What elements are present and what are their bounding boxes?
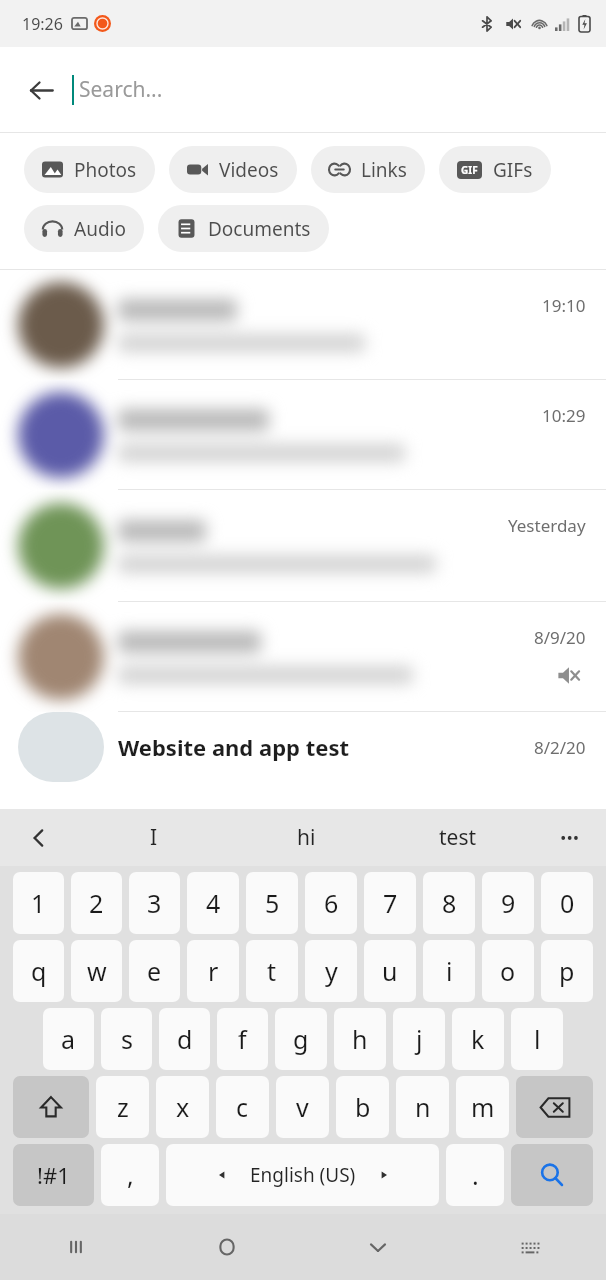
button[interactable]: test <box>382 809 534 866</box>
staticText: Photos <box>74 157 137 183</box>
staticText: 19:26 <box>22 13 63 35</box>
button[interactable] <box>0 380 606 490</box>
button[interactable]: Videos <box>169 146 297 193</box>
staticText: 10:29 <box>542 404 586 427</box>
button[interactable] <box>0 490 606 602</box>
button[interactable]: 7 <box>364 872 416 934</box>
button[interactable]: p <box>541 940 593 1002</box>
staticText: k <box>471 1022 485 1056</box>
button[interactable]: l <box>511 1008 563 1070</box>
button[interactable]: 3 <box>129 872 180 934</box>
button[interactable]: t <box>246 940 298 1002</box>
staticText: Search... <box>79 75 163 104</box>
button[interactable]: 6 <box>305 872 357 934</box>
button[interactable]: x <box>156 1076 209 1138</box>
staticText: 8 <box>442 886 457 920</box>
button[interactable]: Website and app test <box>0 712 606 782</box>
button[interactable]: GIF <box>439 146 551 193</box>
button[interactable]: j <box>393 1008 445 1070</box>
staticText: ••• <box>560 826 580 849</box>
button[interactable] <box>0 270 606 380</box>
button[interactable]: hi <box>230 809 382 866</box>
button[interactable]: 8 <box>423 872 475 934</box>
button[interactable]: Back <box>14 63 68 117</box>
button[interactable]: I <box>78 809 230 866</box>
button[interactable]: 4 <box>187 872 239 934</box>
staticText: 1 <box>31 886 46 920</box>
staticText: test <box>439 823 477 852</box>
button[interactable]: d <box>159 1008 210 1070</box>
button[interactable]: . <box>446 1144 504 1206</box>
button[interactable]: Links <box>311 146 425 193</box>
button[interactable]: More options <box>534 809 606 866</box>
staticText: 0 <box>560 886 575 920</box>
staticText: 19:10 <box>542 294 586 317</box>
button[interactable]: e <box>129 940 180 1002</box>
staticText: English (US) <box>250 1162 356 1188</box>
button[interactable]: b <box>336 1076 389 1138</box>
button[interactable]: Photos <box>24 146 155 193</box>
staticText: 5 <box>265 886 280 920</box>
staticText: 4 <box>206 886 221 920</box>
staticText: r <box>208 954 219 988</box>
staticText: u <box>382 954 398 988</box>
staticText: 6 <box>324 886 339 920</box>
button[interactable]: Shift <box>13 1076 89 1138</box>
button[interactable]: g <box>275 1008 327 1070</box>
button[interactable]: y <box>305 940 357 1002</box>
staticText: h <box>352 1022 368 1056</box>
staticText: w <box>87 954 107 988</box>
button[interactable]: k <box>452 1008 504 1070</box>
button[interactable]: , <box>101 1144 159 1206</box>
button[interactable]: Search <box>511 1144 593 1206</box>
button[interactable]: Keyboard layout <box>454 1214 606 1280</box>
button[interactable]: Backspace <box>516 1076 593 1138</box>
button[interactable]: a <box>43 1008 94 1070</box>
staticText: . <box>472 1158 479 1192</box>
staticText: Audio <box>74 216 126 242</box>
button[interactable]: f <box>217 1008 268 1070</box>
staticText: Website and app test <box>118 732 349 762</box>
staticText: f <box>238 1022 247 1056</box>
staticText: j <box>416 1022 423 1056</box>
button[interactable] <box>0 602 606 712</box>
staticText: m <box>471 1090 495 1124</box>
staticText: hi <box>297 823 316 852</box>
staticText: t <box>267 954 277 988</box>
button[interactable]: Previous suggestions <box>0 809 78 866</box>
button[interactable]: Audio <box>24 205 144 252</box>
button[interactable]: q <box>13 940 64 1002</box>
button[interactable]: n <box>396 1076 449 1138</box>
staticText: a <box>61 1022 76 1056</box>
button[interactable]: v <box>276 1076 329 1138</box>
staticText: 8/2/20 <box>534 736 586 759</box>
button[interactable]: Documents <box>158 205 329 252</box>
button[interactable]: 5 <box>246 872 298 934</box>
button[interactable]: i <box>423 940 475 1002</box>
button[interactable]: h <box>334 1008 386 1070</box>
button[interactable]: z <box>96 1076 149 1138</box>
button[interactable]: Search... <box>72 47 606 132</box>
button[interactable]: 1 <box>13 872 64 934</box>
button[interactable]: English (US) <box>166 1144 439 1206</box>
staticText: y <box>325 954 338 988</box>
staticText: GIFs <box>493 157 533 183</box>
button[interactable]: m <box>456 1076 509 1138</box>
button[interactable]: 0 <box>541 872 593 934</box>
staticText: d <box>177 1022 193 1056</box>
staticText: q <box>31 954 47 988</box>
button[interactable]: 9 <box>482 872 534 934</box>
button[interactable]: s <box>101 1008 152 1070</box>
button[interactable]: Recent apps <box>0 1214 151 1280</box>
button[interactable]: u <box>364 940 416 1002</box>
button[interactable]: 2 <box>71 872 122 934</box>
button[interactable]: o <box>482 940 534 1002</box>
button[interactable]: Home <box>151 1214 302 1280</box>
button[interactable]: Hide keyboard <box>302 1214 454 1280</box>
button[interactable]: c <box>216 1076 269 1138</box>
staticText: 2 <box>89 886 104 920</box>
button[interactable]: w <box>71 940 122 1002</box>
button[interactable]: r <box>187 940 239 1002</box>
staticText: Documents <box>208 216 311 242</box>
button[interactable]: !#1 <box>13 1144 94 1206</box>
